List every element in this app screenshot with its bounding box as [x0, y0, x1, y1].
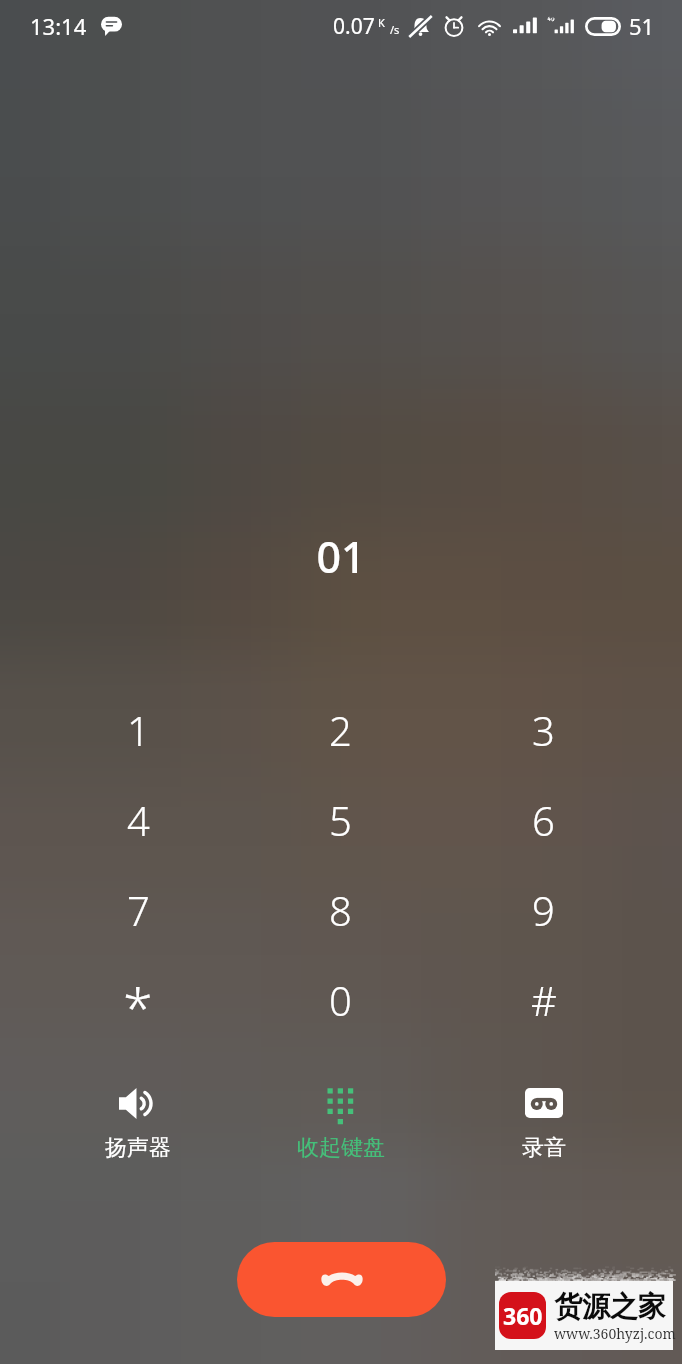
button[interactable]: Hide keypad [239, 1086, 442, 1162]
staticText: 2 [329, 703, 352, 757]
staticText: 360 [503, 1300, 543, 1331]
staticText: 收起键盘 [297, 1134, 385, 1162]
staticText: # [531, 973, 557, 1027]
staticText: 9 [532, 883, 555, 937]
staticText: 3 [532, 703, 555, 757]
button[interactable]: Speaker [37, 1086, 239, 1162]
staticText: 扬声器 [105, 1134, 171, 1162]
staticText: www.360hyzj.com [554, 1324, 676, 1343]
staticText: 5 [329, 793, 352, 847]
button[interactable]: 2 [239, 685, 442, 775]
staticText: 8 [329, 883, 352, 937]
button[interactable]: 0 [239, 955, 442, 1045]
button[interactable]: 1 [37, 685, 239, 775]
button[interactable]: 3 [442, 685, 645, 775]
staticText: 6 [532, 793, 555, 847]
button[interactable]: 7 [37, 865, 239, 955]
staticText: 1 [127, 703, 150, 757]
button[interactable]: 8 [239, 865, 442, 955]
button[interactable]: # [442, 955, 645, 1045]
staticText: 0 [329, 973, 352, 1027]
staticText: 13:14 [30, 11, 87, 41]
button[interactable]: 9 [442, 865, 645, 955]
staticText: 4 [127, 793, 150, 847]
button[interactable]: * [37, 955, 239, 1045]
staticText: 录音 [522, 1134, 566, 1162]
staticText: 51 [629, 11, 655, 41]
staticText: 7 [127, 883, 150, 937]
staticText: K [378, 15, 385, 30]
staticText: 01 [0, 527, 682, 586]
button[interactable]: End call [237, 1242, 446, 1317]
staticText: 货源之家 [554, 1289, 666, 1324]
button[interactable]: 5 [239, 775, 442, 865]
staticText: 0.07 [333, 12, 375, 41]
button[interactable]: Record [442, 1086, 645, 1162]
staticText: * [123, 970, 153, 1044]
button[interactable]: 6 [442, 775, 645, 865]
staticText: /s [390, 22, 400, 37]
button[interactable]: 4 [37, 775, 239, 865]
